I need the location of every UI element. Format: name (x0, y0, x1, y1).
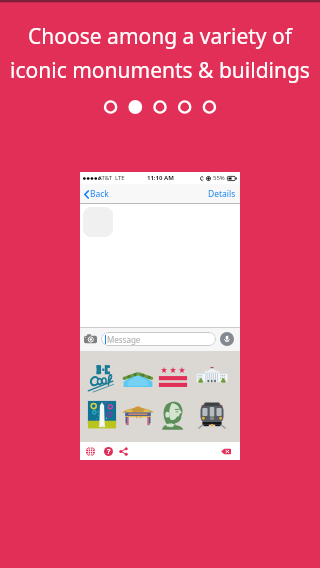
button[interactable]: DC flag (157, 362, 189, 394)
button[interactable]: Switch keyboard (86, 447, 95, 456)
button[interactable]: Washington Monument (86, 399, 118, 431)
staticText: AT&T (98, 174, 112, 182)
staticText: ? (107, 447, 111, 456)
staticText: Choose among a variety of iconic monumen… (10, 22, 310, 84)
button[interactable]: White House (196, 362, 228, 394)
button[interactable]: Page 4 (178, 101, 191, 114)
button[interactable]: Metro train (196, 399, 228, 431)
button[interactable]: Pool (122, 362, 154, 394)
button[interactable]: DC Cool (86, 362, 118, 394)
button[interactable]: Help (104, 447, 113, 456)
button[interactable]: Page 3 (153, 101, 166, 114)
button[interactable]: Back (84, 188, 111, 200)
button[interactable]: Details (208, 188, 236, 200)
button[interactable]: Microphone (220, 332, 234, 346)
staticText: 11:10 AM (147, 174, 174, 182)
button[interactable]: Lincoln (157, 399, 189, 431)
button[interactable]: Camera (84, 333, 97, 346)
button[interactable]: Page 1 (104, 101, 117, 114)
staticText: Back (90, 188, 109, 200)
button[interactable]: Share (119, 447, 128, 456)
button[interactable]: Chinatown arch (122, 399, 154, 431)
staticText: 55% (213, 174, 225, 182)
button[interactable]: Page 2 (129, 101, 142, 114)
staticText: Message (107, 334, 141, 345)
staticText: LTE (115, 174, 125, 182)
button[interactable]: Delete (221, 448, 231, 455)
button[interactable]: Message (101, 332, 216, 346)
button[interactable]: Page 5 (203, 101, 216, 114)
